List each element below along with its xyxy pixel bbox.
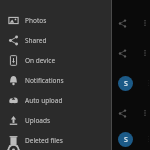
staticText: S: [124, 79, 128, 89]
other: More options: [147, 79, 150, 87]
staticText: Uploads: [25, 116, 51, 125]
button[interactable]: Deleted files: [0, 130, 112, 150]
other: Share: [118, 19, 127, 28]
staticText: Deleted files: [25, 136, 63, 145]
button[interactable]: Auto upload: [0, 90, 112, 110]
button[interactable]: Notifications: [0, 70, 112, 90]
button[interactable]: S: [0, 128, 150, 150]
button[interactable]: S: [0, 68, 150, 98]
other: Share: [118, 49, 127, 58]
other: More options: [147, 135, 150, 143]
button[interactable]: On device: [0, 50, 112, 70]
staticText: Shared: [25, 36, 47, 45]
other: Share: [118, 109, 127, 118]
staticText: On device: [25, 56, 56, 65]
other: More options: [141, 49, 149, 57]
staticText: Auto upload: [25, 96, 63, 105]
other: More options: [141, 109, 149, 117]
staticText: Notifications: [25, 76, 64, 85]
button[interactable]: Uploads: [0, 110, 112, 130]
button[interactable]: Shared: [0, 30, 112, 50]
button[interactable]: Photos: [0, 10, 112, 30]
other: More options: [141, 19, 149, 27]
staticText: S: [124, 135, 128, 145]
button[interactable]: Share: [0, 98, 150, 128]
button[interactable]: Share: [0, 38, 150, 68]
staticText: Photos: [25, 16, 47, 25]
button[interactable]: Share: [0, 8, 150, 38]
